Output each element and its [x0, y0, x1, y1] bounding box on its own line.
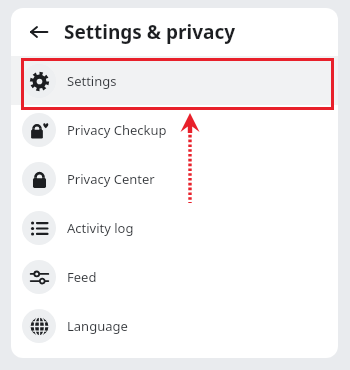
staticText: Privacy Checkup	[67, 121, 167, 139]
button[interactable]: Settings	[11, 56, 338, 105]
button[interactable]: Feed	[11, 252, 338, 301]
staticText: Language	[67, 317, 128, 335]
staticText: Feed	[67, 268, 97, 286]
button[interactable]: Privacy Center	[11, 154, 338, 203]
button[interactable]: Privacy Checkup	[11, 105, 338, 154]
staticText: Privacy Center	[67, 170, 155, 188]
button[interactable]: Back	[23, 16, 55, 48]
staticText: Settings & privacy	[64, 19, 236, 45]
button[interactable]: Activity log	[11, 203, 338, 252]
staticText: Settings	[67, 72, 117, 90]
staticText: Activity log	[67, 219, 134, 237]
button[interactable]: Language	[11, 301, 338, 350]
